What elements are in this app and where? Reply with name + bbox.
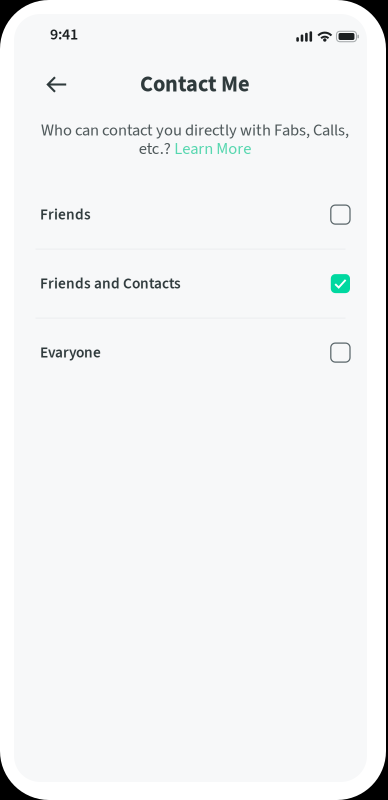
- staticText: Friends: [40, 204, 91, 225]
- button[interactable]: Back: [40, 69, 74, 100]
- button[interactable]: Friends and Contacts: [14, 250, 367, 318]
- button[interactable]: Learn More: [174, 137, 251, 160]
- staticText: etc.?: [139, 137, 171, 160]
- staticText: Learn More: [174, 137, 251, 160]
- button[interactable]: Friends: [14, 181, 367, 249]
- staticText: Evaryone: [40, 342, 101, 363]
- staticText: 9:41: [50, 23, 78, 46]
- staticText: Contact Me: [140, 69, 250, 100]
- staticText: Friends and Contacts: [40, 273, 181, 294]
- button[interactable]: Evaryone: [14, 319, 367, 387]
- staticText: Who can contact you directly with Fabs, …: [41, 119, 349, 142]
